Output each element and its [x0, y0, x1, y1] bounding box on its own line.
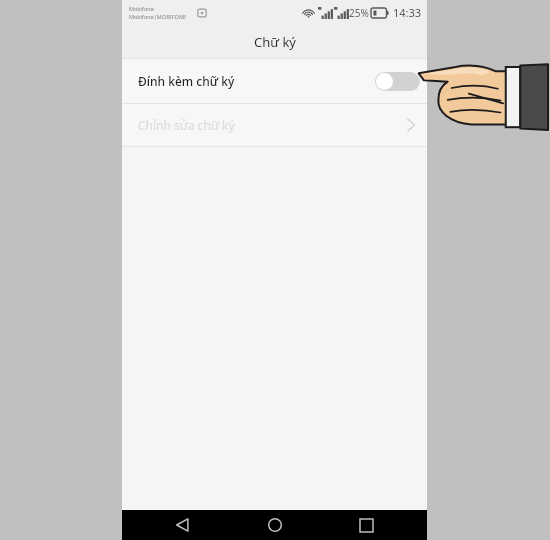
staticText: Mobifone|MOBIFONE	[129, 13, 186, 20]
staticText: Chữ ký	[254, 33, 296, 51]
staticText: Chỉnh sửa chữ ký	[138, 117, 235, 133]
button[interactable]: Back	[153, 510, 213, 540]
staticText: 25%	[349, 6, 369, 20]
button[interactable]: Chỉnh sửa chữ ký	[122, 104, 427, 146]
button[interactable]: Home	[245, 510, 305, 540]
button[interactable]: Attach signature toggle	[375, 72, 420, 91]
button[interactable]: Đính kèm chữ ký	[122, 59, 427, 103]
button[interactable]: Recents	[336, 510, 396, 540]
staticText: 14:33	[393, 5, 422, 20]
staticText: Mobifone	[129, 5, 154, 12]
staticText: Đính kèm chữ ký	[138, 73, 235, 89]
